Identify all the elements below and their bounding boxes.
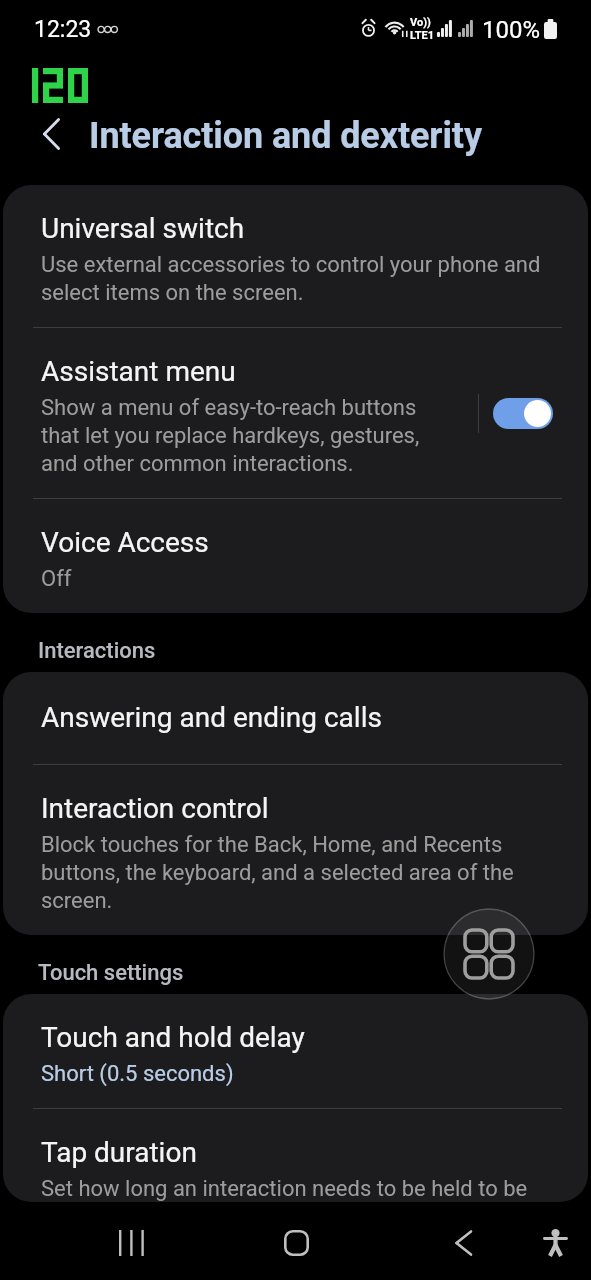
staticText: 100%	[482, 13, 541, 44]
button[interactable]: Recents	[94, 1206, 168, 1280]
staticText: Vo))	[410, 16, 431, 29]
staticText: Touch and hold delay	[41, 1022, 305, 1054]
button[interactable]: Accessibility	[518, 1206, 591, 1280]
staticText: Interaction and dexterity	[89, 111, 482, 158]
staticText: Voice Access	[41, 527, 209, 559]
staticText: Off	[41, 564, 72, 592]
staticText: Short (0.5 seconds)	[41, 1059, 234, 1087]
staticText: Universal switch	[41, 213, 245, 245]
button[interactable]: Assistant menu, on	[493, 398, 553, 429]
button[interactable]: Assistant menu	[3, 328, 588, 498]
staticText: Use external accessories to control your…	[41, 250, 550, 306]
button[interactable]: Answering and ending calls	[3, 672, 588, 764]
staticText: Interaction control	[41, 793, 269, 825]
staticText: Set how long an interaction needs to be …	[41, 1174, 528, 1202]
staticText: 12:23	[34, 13, 92, 43]
staticText: Assistant menu	[41, 356, 236, 388]
button[interactable]: Tap duration	[3, 1109, 588, 1202]
button[interactable]: Home	[259, 1206, 333, 1280]
button[interactable]: Voice Access	[3, 499, 588, 613]
button[interactable]: Universal switch	[3, 185, 588, 327]
staticText: Show a menu of easy-to-reach buttons tha…	[41, 393, 438, 477]
button[interactable]: Interaction control	[3, 765, 588, 935]
button[interactable]: Navigate up	[0, 103, 84, 165]
staticText: Tap duration	[41, 1137, 197, 1169]
staticText: Interactions	[38, 637, 156, 663]
button[interactable]: Touch and hold delay	[3, 994, 588, 1108]
staticText: Block touches for the Back, Home, and Re…	[41, 830, 550, 914]
staticText: Answering and ending calls	[41, 702, 382, 734]
button[interactable]: Assistant menu	[443, 908, 535, 1000]
button[interactable]: Back	[425, 1206, 499, 1280]
staticText: LTE1	[410, 29, 435, 42]
staticText: Touch settings	[38, 959, 184, 985]
